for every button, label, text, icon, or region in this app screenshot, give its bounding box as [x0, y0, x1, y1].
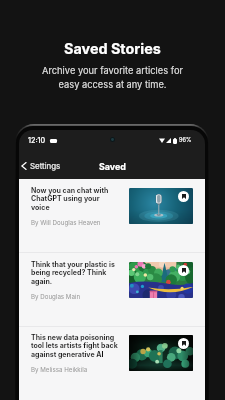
staticText: Think that your plastic is being recycle…	[31, 260, 118, 286]
staticText: 96%	[179, 137, 192, 144]
staticText: Saved Stories	[64, 40, 161, 57]
staticText: Saved	[99, 161, 126, 172]
staticText: Now you can chat with ChatGPT using your…	[31, 186, 118, 212]
staticText: By Melissa Heikkila	[31, 366, 88, 374]
button[interactable]: Bookmark	[178, 265, 189, 276]
staticText: Settings	[30, 161, 61, 171]
button[interactable]: Think that your plastic is being recycle…	[19, 253, 205, 327]
staticText: By Will Douglas Heaven	[31, 219, 101, 227]
staticText: Archive your favorite articles for easy …	[42, 65, 183, 90]
button[interactable]: Settings	[19, 157, 65, 175]
staticText: This new data poisoning tool lets artist…	[31, 333, 118, 359]
button[interactable]: Now you can chat with ChatGPT using your…	[19, 179, 205, 253]
staticText: By Douglas Main	[31, 293, 81, 301]
button[interactable]: Bookmark	[178, 338, 189, 349]
staticText: 12:10	[28, 136, 46, 145]
button[interactable]: Bookmark	[178, 191, 189, 202]
button[interactable]: This new data poisoning tool lets artist…	[19, 326, 205, 400]
